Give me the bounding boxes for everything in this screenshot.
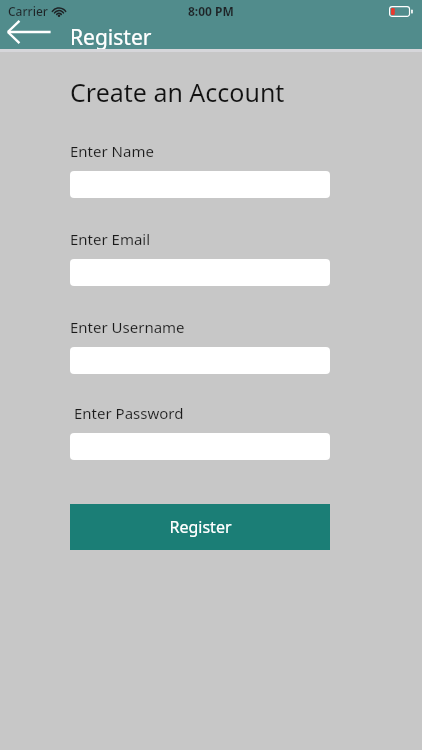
button[interactable]: Register [70, 504, 330, 550]
staticText: Enter Email [70, 229, 151, 249]
staticText: Register [169, 516, 232, 538]
staticText: Enter Username [70, 317, 185, 337]
staticText: Enter Name [70, 141, 154, 161]
staticText: Enter Password [74, 403, 184, 423]
button[interactable]: Back [2, 18, 56, 45]
staticText: 8:00 PM [188, 3, 234, 19]
staticText: Carrier [8, 3, 48, 19]
staticText: Create an Account [70, 75, 285, 109]
staticText: Register [70, 23, 152, 50]
